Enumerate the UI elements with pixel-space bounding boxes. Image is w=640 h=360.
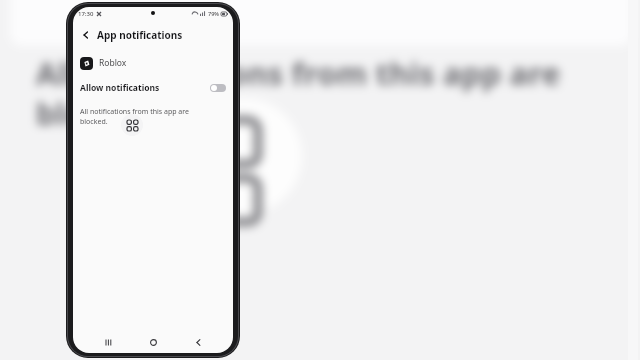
- staticText: 79%: [208, 10, 219, 17]
- staticText: App notifications: [97, 28, 183, 42]
- staticText: All notifications from this app are: [36, 52, 561, 94]
- staticText: All notifications from this app are: [80, 107, 189, 117]
- staticText: Roblox: [99, 57, 127, 69]
- button[interactable]: Allow notifications: [73, 77, 233, 99]
- button[interactable]: Roblox: [73, 52, 233, 74]
- button[interactable]: Back: [78, 27, 94, 43]
- staticText: Allow notifications: [80, 82, 160, 94]
- staticText: 17:30: [78, 10, 94, 18]
- button[interactable]: Home: [143, 332, 163, 352]
- button[interactable]: Back: [188, 332, 208, 352]
- staticText: blocked.: [80, 117, 108, 127]
- button[interactable]: Recents: [98, 332, 118, 352]
- staticText: blocked: [36, 92, 159, 134]
